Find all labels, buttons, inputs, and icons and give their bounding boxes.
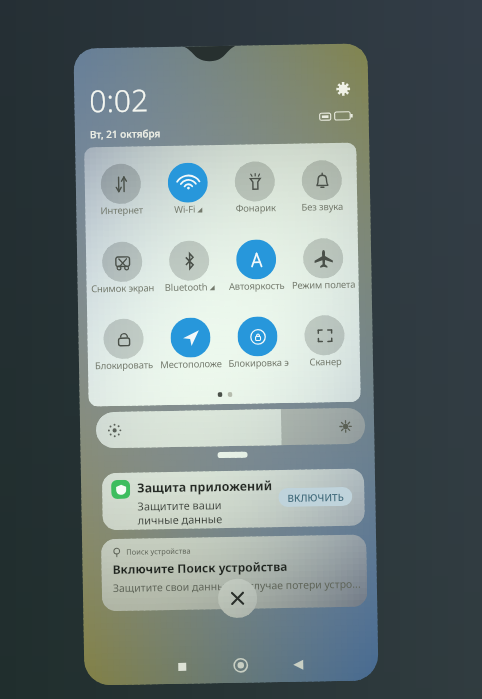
staticText: Снимок экран xyxy=(90,281,155,295)
button[interactable] xyxy=(100,163,141,204)
staticText: Bluetooth xyxy=(164,280,208,294)
button[interactable] xyxy=(301,160,342,201)
staticText: Защитите ваши личные данные xyxy=(137,497,223,528)
button[interactable] xyxy=(102,241,142,282)
button[interactable]: Поиск устройства xyxy=(101,535,367,611)
staticText: Вт, 21 октября xyxy=(90,126,161,141)
button[interactable]: Expand xyxy=(217,452,248,458)
button[interactable]: Brightness xyxy=(96,408,365,448)
button[interactable]: ВКЛЮЧИТЬ xyxy=(278,487,352,507)
staticText: Сканер xyxy=(309,355,342,369)
staticText: ВКЛЮЧИТЬ xyxy=(287,490,344,505)
button[interactable] xyxy=(169,240,209,281)
staticText: Местоположе xyxy=(160,357,222,371)
button[interactable]: Settings xyxy=(331,77,355,101)
staticText: 0:02 xyxy=(89,79,149,121)
staticText: Без звука xyxy=(301,200,343,214)
staticText: Поиск устройства xyxy=(126,546,191,557)
staticText: Защита приложений xyxy=(137,477,272,497)
staticText: Режим полета xyxy=(291,278,356,292)
staticText: Wi-Fi xyxy=(174,202,195,216)
button[interactable]: Recents xyxy=(167,652,196,681)
button[interactable] xyxy=(304,315,345,356)
staticText: Фонарик xyxy=(235,201,276,215)
button[interactable] xyxy=(237,316,278,357)
button[interactable] xyxy=(303,238,343,279)
staticText: Включите Поиск устройства xyxy=(112,558,288,577)
staticText: Блокировка э xyxy=(228,356,289,370)
staticText: Автояркость xyxy=(228,279,285,293)
button[interactable]: Home xyxy=(226,650,255,680)
button[interactable] xyxy=(234,161,275,202)
button[interactable]: Close xyxy=(218,578,257,618)
staticText: Защитите свои данные на случае потери ус… xyxy=(113,577,361,595)
button[interactable] xyxy=(170,317,211,358)
button[interactable]: Back xyxy=(283,649,312,679)
button[interactable] xyxy=(167,162,208,203)
button[interactable]: Защита приложений xyxy=(102,469,365,530)
staticText: Блокировать xyxy=(95,358,153,372)
staticText: Интернет xyxy=(100,203,143,217)
button[interactable] xyxy=(236,239,276,280)
button[interactable] xyxy=(103,318,144,359)
